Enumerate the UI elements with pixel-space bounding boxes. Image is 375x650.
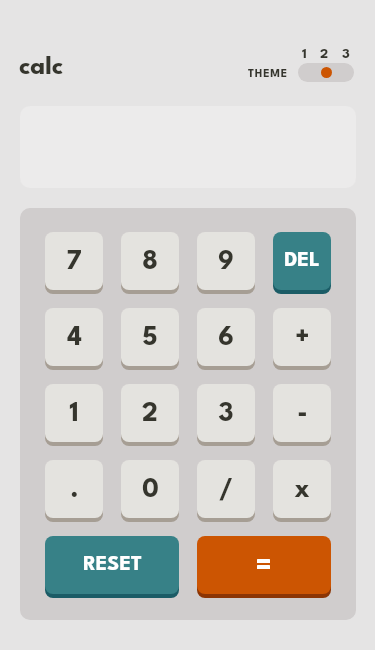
staticText: DEL xyxy=(284,251,320,271)
button[interactable]: 8 xyxy=(121,232,179,294)
staticText: 1 xyxy=(69,401,79,427)
button[interactable]: Reset xyxy=(45,536,179,598)
staticText: RESET xyxy=(83,555,142,575)
staticText: calc xyxy=(19,55,64,79)
staticText: - xyxy=(297,401,308,427)
button[interactable]: / xyxy=(197,460,255,522)
button[interactable]: 3 xyxy=(197,384,255,446)
button[interactable]: 1 xyxy=(45,384,103,446)
staticText: x xyxy=(294,477,310,503)
staticText: 5 xyxy=(142,325,158,351)
staticText: 2 xyxy=(142,401,158,427)
button[interactable]: 4 xyxy=(45,308,103,370)
button[interactable]: Delete xyxy=(273,232,331,294)
staticText: 3 xyxy=(342,48,350,61)
staticText: 2 xyxy=(320,48,329,61)
button[interactable]: calc xyxy=(19,55,64,79)
staticText: 3 xyxy=(218,401,234,427)
button[interactable]: 5 xyxy=(121,308,179,370)
staticText: 9 xyxy=(218,249,234,275)
button[interactable]: Equals xyxy=(197,536,331,598)
button[interactable]: 9 xyxy=(197,232,255,294)
button[interactable]: Theme selector, theme 2 of 3 xyxy=(298,63,354,82)
staticText: 4 xyxy=(67,325,82,351)
button[interactable]: - xyxy=(273,384,331,446)
staticText: / xyxy=(219,477,233,503)
staticText: . xyxy=(70,477,79,503)
staticText: 8 xyxy=(142,249,158,275)
button[interactable]: + xyxy=(273,308,331,370)
staticText: 1 xyxy=(302,48,307,61)
staticText: + xyxy=(295,325,310,351)
button[interactable]: . xyxy=(45,460,103,522)
button[interactable]: x xyxy=(273,460,331,522)
staticText: 7 xyxy=(66,249,82,275)
button[interactable]: 2 xyxy=(121,384,179,446)
staticText: 0 xyxy=(142,477,159,503)
button[interactable]: 7 xyxy=(45,232,103,294)
staticText: THEME xyxy=(248,69,288,80)
staticText: 6 xyxy=(218,325,234,351)
button[interactable]: 6 xyxy=(197,308,255,370)
button[interactable]: 0 xyxy=(121,460,179,522)
